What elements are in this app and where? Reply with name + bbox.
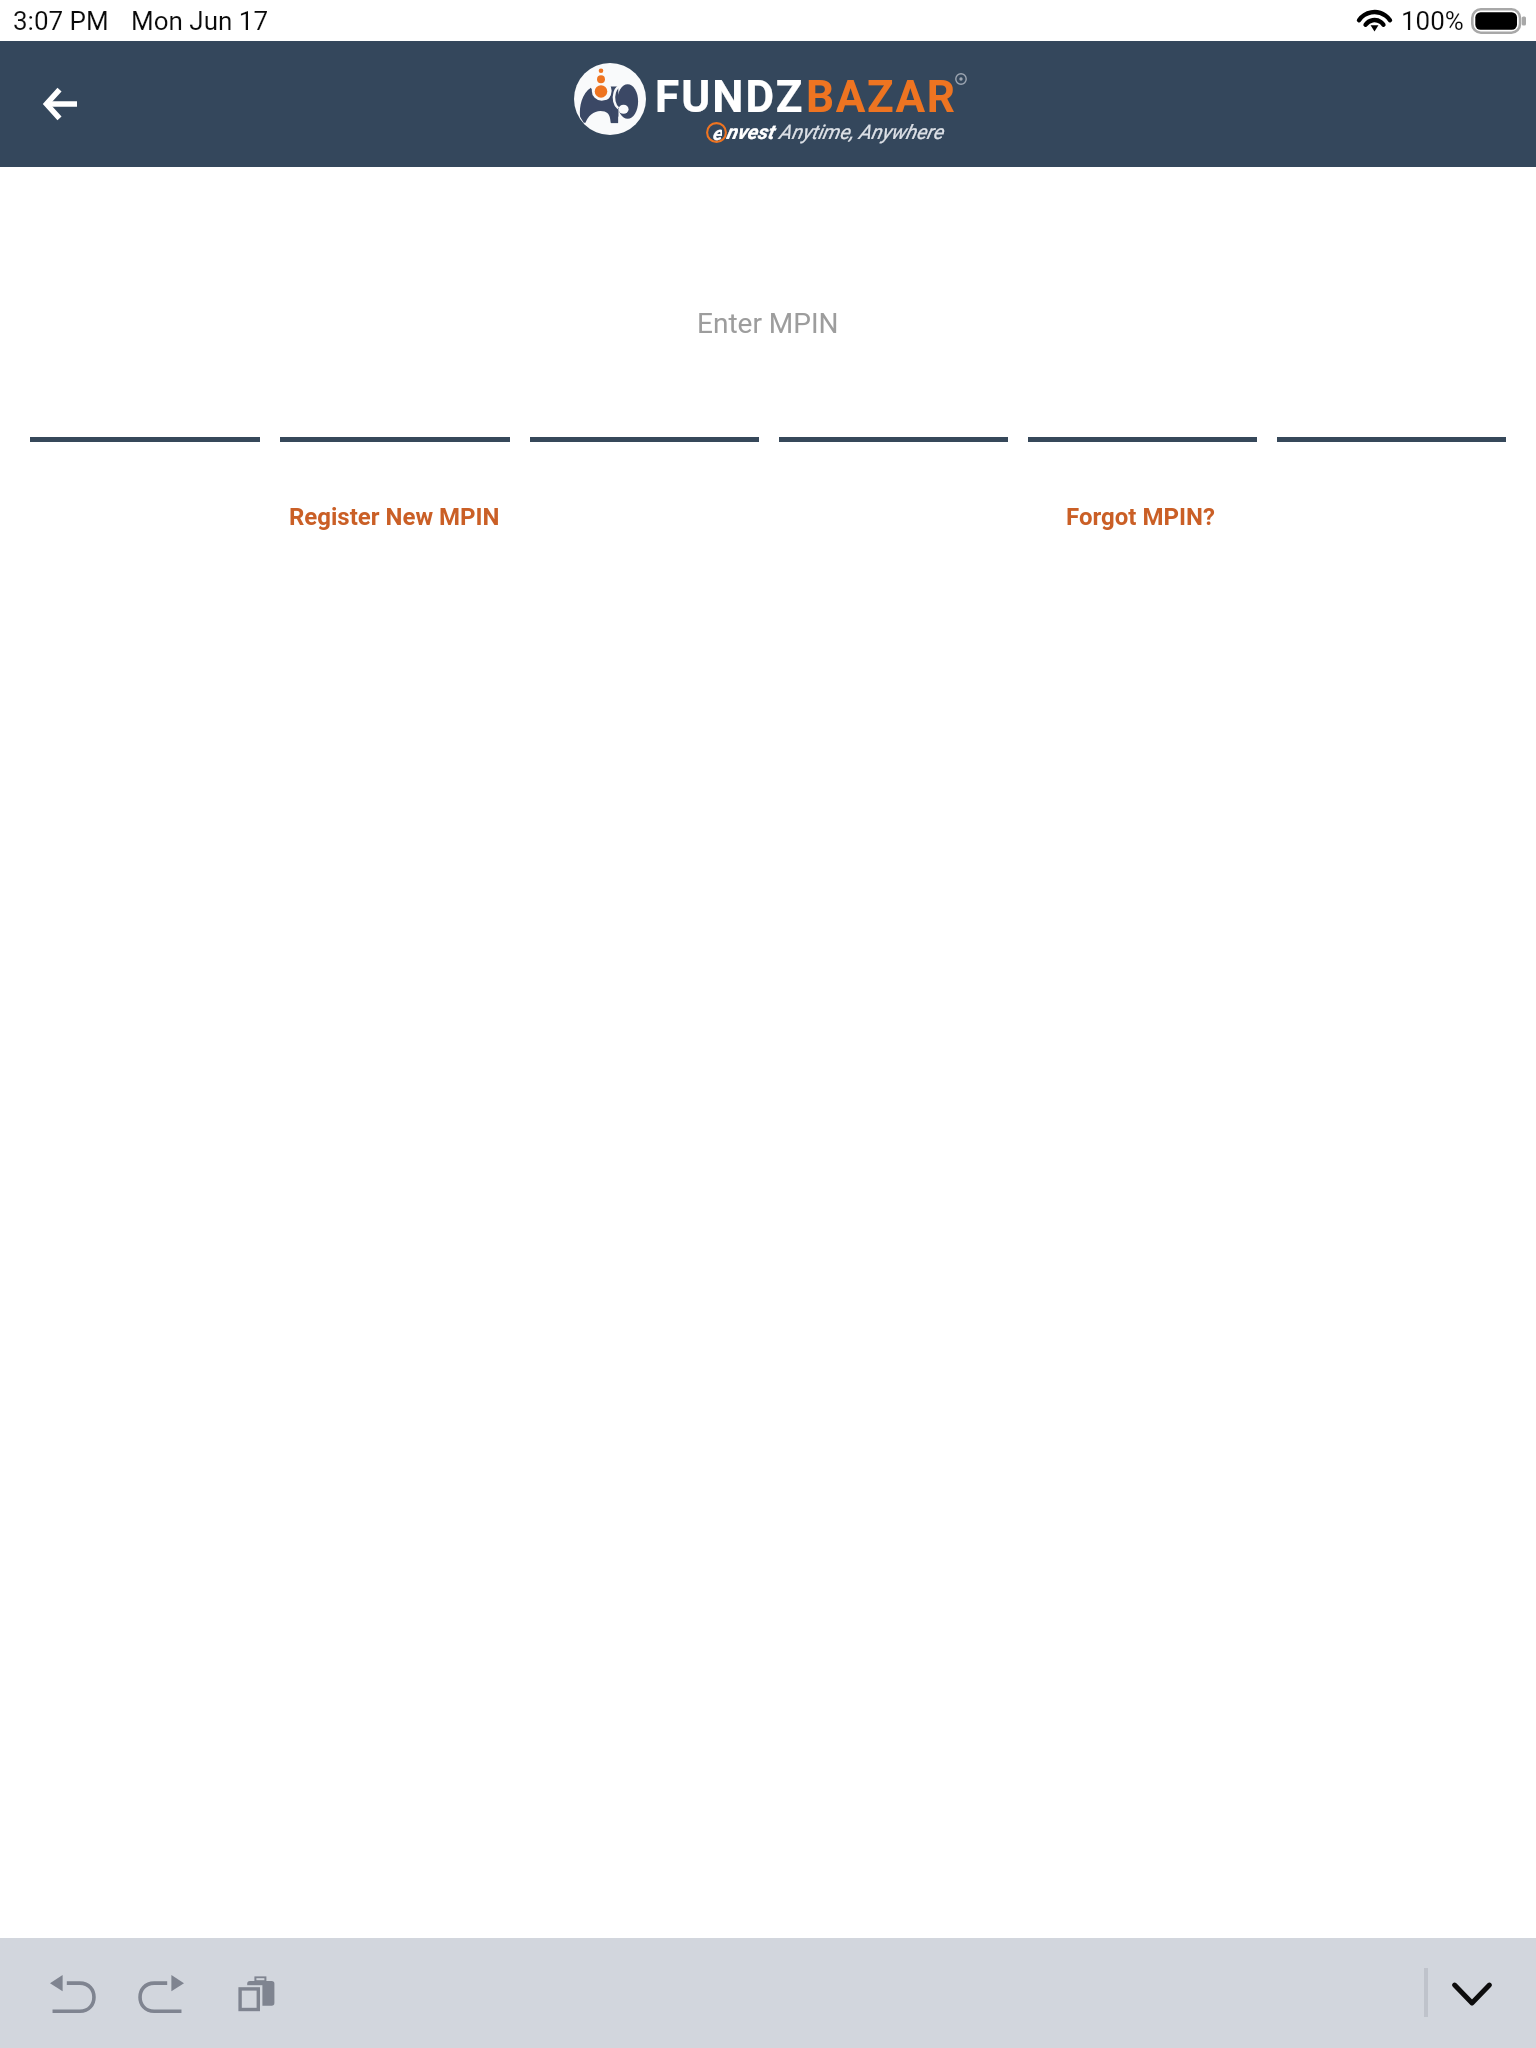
button[interactable]: Paste [214,1952,298,2036]
button[interactable]: Back [29,73,91,135]
button[interactable]: Redo [121,1952,205,2036]
button[interactable]: Forgot MPIN? [1054,491,1227,543]
staticText: Enter MPIN [697,307,839,340]
button[interactable]: Hide keyboard [1430,1952,1514,2036]
staticText: Forgot MPIN? [1066,503,1215,531]
button[interactable]: Undo [29,1952,113,2036]
staticText: BAZAR [806,71,957,123]
staticText: nvest Anytime, Anywhere [726,120,943,143]
button[interactable]: Register New MPIN [277,491,512,543]
staticText: Mon Jun 17 [131,6,269,36]
staticText: 100% [1401,6,1464,36]
staticText: FUNDZ [655,71,805,123]
staticText: 3:07 PM [13,6,109,36]
staticText: Register New MPIN [289,503,500,531]
staticText: e [712,122,722,143]
